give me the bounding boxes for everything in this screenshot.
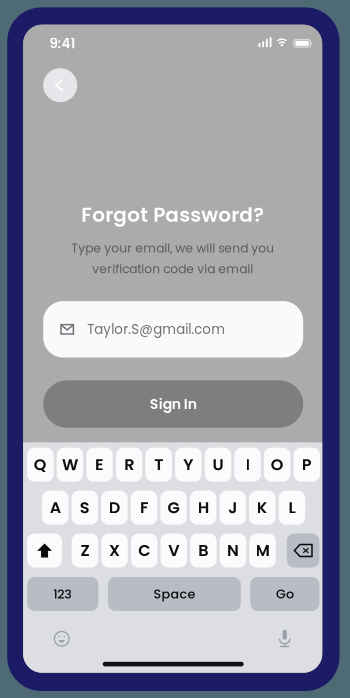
staticText: M	[256, 539, 270, 562]
button[interactable]: A	[42, 491, 68, 525]
button[interactable]: E	[86, 448, 113, 482]
staticText: C	[138, 539, 150, 562]
staticText: O	[271, 453, 284, 476]
button[interactable]: V	[160, 533, 187, 567]
staticText: S	[80, 496, 90, 519]
staticText: F	[140, 496, 148, 519]
staticText: H	[198, 496, 209, 519]
button[interactable]: W	[57, 448, 83, 482]
button[interactable]: Q	[27, 448, 54, 482]
staticText: 123	[53, 585, 72, 603]
staticText: X	[109, 539, 120, 562]
button[interactable]: B	[190, 533, 217, 567]
staticText: Z	[80, 539, 89, 562]
button[interactable]: Back	[43, 68, 77, 102]
button[interactable]: P	[293, 448, 320, 482]
button[interactable]: Emoji	[47, 627, 77, 651]
staticText: Go	[276, 585, 294, 603]
button[interactable]: T	[145, 448, 172, 482]
button[interactable]: C	[131, 533, 157, 567]
staticText: R	[124, 453, 134, 476]
staticText: K	[257, 496, 268, 519]
button[interactable]: Go	[250, 577, 319, 611]
button[interactable]: O	[264, 448, 290, 482]
button[interactable]: K	[249, 491, 276, 525]
button[interactable]: Dictate	[270, 626, 300, 650]
button[interactable]: Z	[72, 533, 98, 567]
button[interactable]: U	[205, 448, 231, 482]
staticText: U	[212, 453, 223, 476]
staticText: Type your email, we will send you	[71, 240, 274, 257]
staticText: J	[228, 496, 237, 519]
staticText: L	[288, 496, 295, 519]
staticText: Forgot Password?	[81, 201, 264, 229]
staticText: N	[227, 539, 239, 562]
staticText: D	[109, 496, 120, 519]
staticText: T	[154, 453, 163, 476]
button[interactable]: Space	[108, 577, 241, 611]
button[interactable]: N	[220, 533, 246, 567]
button[interactable]: R	[116, 448, 142, 482]
staticText: verification code via email	[92, 260, 253, 278]
staticText: B	[198, 539, 208, 562]
staticText: W	[62, 453, 78, 476]
button[interactable]: Shift	[27, 533, 62, 567]
staticText: Sign In	[150, 394, 197, 414]
button[interactable]: D	[101, 491, 128, 525]
button[interactable]: H	[190, 491, 216, 525]
button[interactable]: S	[71, 491, 98, 525]
button[interactable]: L	[279, 491, 305, 525]
staticText: E	[95, 453, 104, 476]
button[interactable]: G	[160, 491, 187, 525]
staticText: Space	[153, 585, 195, 603]
staticText: A	[50, 496, 61, 519]
staticText: P	[302, 453, 312, 476]
button[interactable]: I	[234, 448, 261, 482]
staticText: G	[167, 496, 179, 519]
button[interactable]: 123	[27, 577, 98, 611]
staticText: Q	[34, 453, 47, 476]
button[interactable]: X	[101, 533, 128, 567]
button[interactable]: Sign In	[43, 380, 303, 428]
staticText: Taylor.S@gmail.com	[87, 320, 225, 339]
staticText: 9:41	[50, 34, 76, 53]
staticText: V	[168, 539, 179, 562]
button[interactable]: M	[249, 533, 276, 567]
staticText: I	[246, 453, 250, 476]
button[interactable]: J	[219, 491, 246, 525]
button[interactable]: Delete	[287, 533, 319, 567]
button[interactable]: Y	[175, 448, 202, 482]
staticText: Y	[183, 453, 193, 476]
button[interactable]: F	[131, 491, 157, 525]
